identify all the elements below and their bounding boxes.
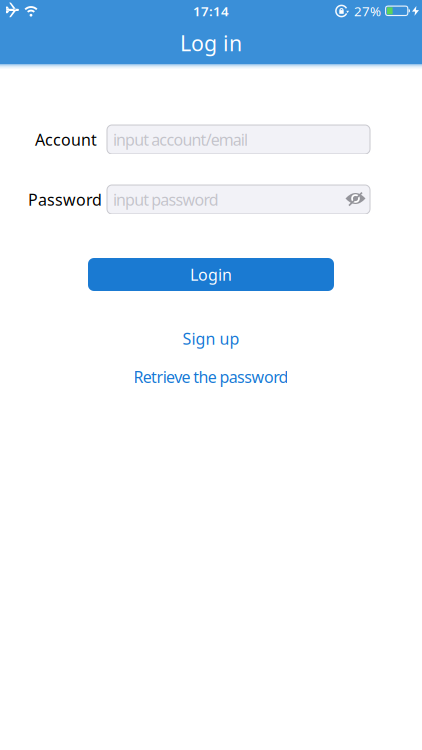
staticText: Log in xyxy=(180,29,242,57)
button[interactable]: Login xyxy=(88,258,334,291)
button[interactable] xyxy=(345,192,366,207)
button[interactable]: Retrieve the password xyxy=(133,366,288,387)
staticText: Sign up xyxy=(182,328,239,349)
staticText: input password xyxy=(113,189,219,210)
button[interactable]: Sign up xyxy=(182,328,239,349)
staticText: Retrieve the password xyxy=(133,366,288,387)
staticText: Login xyxy=(190,264,232,285)
staticText: input account/email xyxy=(113,129,248,150)
staticText: Password xyxy=(28,189,102,210)
staticText: 17:14 xyxy=(193,2,229,20)
button[interactable]: input account/email xyxy=(107,125,370,154)
button[interactable]: input password xyxy=(107,185,370,214)
staticText: Account xyxy=(35,129,97,150)
staticText: 27% xyxy=(354,2,381,20)
